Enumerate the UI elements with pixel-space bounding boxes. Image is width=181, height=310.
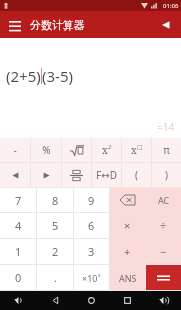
button[interactable]: ANS [110, 265, 145, 290]
staticText: 2 [52, 244, 59, 259]
staticText: . [54, 270, 57, 285]
staticText: 01:06 [163, 2, 179, 10]
button[interactable]: Move right [31, 163, 61, 187]
staticText: x [131, 143, 137, 157]
button[interactable]: Delete [110, 188, 145, 212]
button[interactable]: ( [122, 163, 151, 187]
button[interactable]: AC [146, 188, 181, 212]
button[interactable]: Menu [5, 15, 25, 35]
button[interactable]: 2 [37, 239, 73, 264]
staticText: 2 [108, 143, 112, 151]
button[interactable]: − [146, 239, 181, 264]
staticText: ÷ [160, 218, 167, 233]
staticText: □ [137, 143, 143, 150]
button[interactable]: 4 [0, 213, 36, 238]
other: Delete [110, 188, 145, 212]
button[interactable]: F↔D [92, 163, 121, 187]
button[interactable]: 1 [0, 239, 36, 264]
button[interactable]: . [37, 265, 73, 290]
staticText: 0 [15, 270, 22, 285]
staticText: π [163, 143, 170, 157]
staticText: 6 [88, 218, 95, 233]
button[interactable]: 0 [0, 265, 36, 290]
staticText: x [98, 272, 101, 279]
staticText: =14 [157, 120, 175, 134]
staticText: ×10 [82, 272, 98, 284]
button[interactable]: x [122, 138, 151, 162]
button[interactable]: Equals [146, 265, 181, 290]
staticText: x [102, 143, 108, 157]
staticText: 9 [88, 193, 95, 208]
button[interactable]: - [0, 138, 30, 162]
staticText: × [124, 218, 131, 233]
staticText: − [160, 244, 167, 259]
staticText: 1 [15, 244, 22, 259]
button[interactable]: Home [73, 291, 109, 310]
button[interactable]: 6 [74, 213, 109, 238]
button[interactable]: 7 [0, 188, 36, 212]
staticText: AC [158, 194, 170, 206]
staticText: ( [135, 168, 138, 182]
button[interactable]: Move left [0, 163, 30, 187]
staticText: 7 [15, 193, 22, 208]
button[interactable]: ) [152, 163, 181, 187]
button[interactable]: Back [37, 291, 73, 310]
button[interactable]: 8 [37, 188, 73, 212]
button[interactable]: % [31, 138, 61, 162]
button[interactable]: Fraction [62, 163, 91, 187]
staticText: (2+5) [6, 66, 41, 86]
staticText: (3-5) [42, 66, 73, 86]
other: Equals [146, 265, 181, 290]
button[interactable]: π [152, 138, 181, 162]
staticText: 分数计算器 [30, 18, 85, 32]
staticText: F↔D [96, 168, 117, 182]
staticText: ANS [119, 272, 137, 284]
button[interactable]: + [110, 239, 145, 264]
staticText: % [42, 143, 51, 157]
button[interactable]: 9 [74, 188, 109, 212]
button[interactable]: Volume up [145, 291, 181, 310]
button[interactable]: ×10 [74, 265, 109, 290]
staticText: ) [165, 168, 168, 182]
button[interactable]: ÷ [146, 213, 181, 238]
button[interactable]: 5 [37, 213, 73, 238]
button[interactable]: x [92, 138, 121, 162]
staticText: 3 [88, 244, 95, 259]
staticText: 5 [52, 218, 59, 233]
button[interactable]: × [110, 213, 145, 238]
button[interactable]: Square root [62, 138, 91, 162]
staticText: 4 [15, 218, 22, 233]
staticText: + [124, 244, 131, 259]
staticText: - [13, 143, 17, 157]
button[interactable]: Recents [109, 291, 145, 310]
staticText: 8 [52, 193, 59, 208]
button[interactable]: Back [156, 15, 176, 35]
button[interactable]: Volume down [0, 291, 37, 310]
button[interactable]: 3 [74, 239, 109, 264]
